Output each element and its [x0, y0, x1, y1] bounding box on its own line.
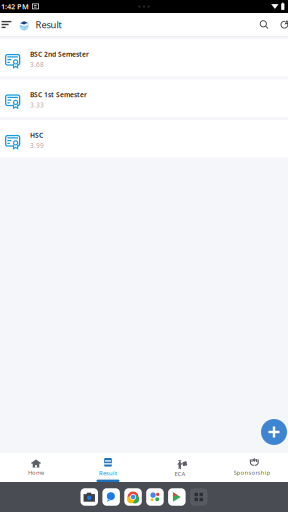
- button[interactable]: Add: [261, 419, 287, 445]
- button[interactable]: Search: [257, 18, 270, 31]
- button[interactable]: BSC 2nd Semester: [0, 39, 288, 76]
- staticText: BSC 1st Semester: [30, 90, 87, 99]
- button[interactable]: HSC: [0, 120, 288, 157]
- staticText: Home: [28, 468, 44, 476]
- staticText: 3.33: [30, 101, 44, 109]
- staticText: ECA: [174, 470, 185, 478]
- staticText: 3.68: [30, 60, 44, 69]
- staticText: BSC 2nd Semester: [30, 49, 89, 59]
- staticText: Result: [99, 469, 117, 477]
- button[interactable]: Menu: [1, 17, 16, 31]
- button[interactable]: Result: [72, 453, 144, 482]
- button[interactable]: Home: [0, 453, 72, 482]
- staticText: Sponsorship: [233, 468, 270, 476]
- staticText: 3.99: [30, 141, 44, 150]
- staticText: HSC: [30, 130, 43, 140]
- staticText: Result: [35, 18, 61, 31]
- staticText: 1:42 PM: [1, 1, 29, 11]
- button[interactable]: ECA: [144, 453, 216, 482]
- button[interactable]: BSC 1st Semester: [0, 79, 288, 117]
- button[interactable]: Refresh: [280, 18, 288, 31]
- button[interactable]: Sponsorship: [216, 453, 288, 482]
